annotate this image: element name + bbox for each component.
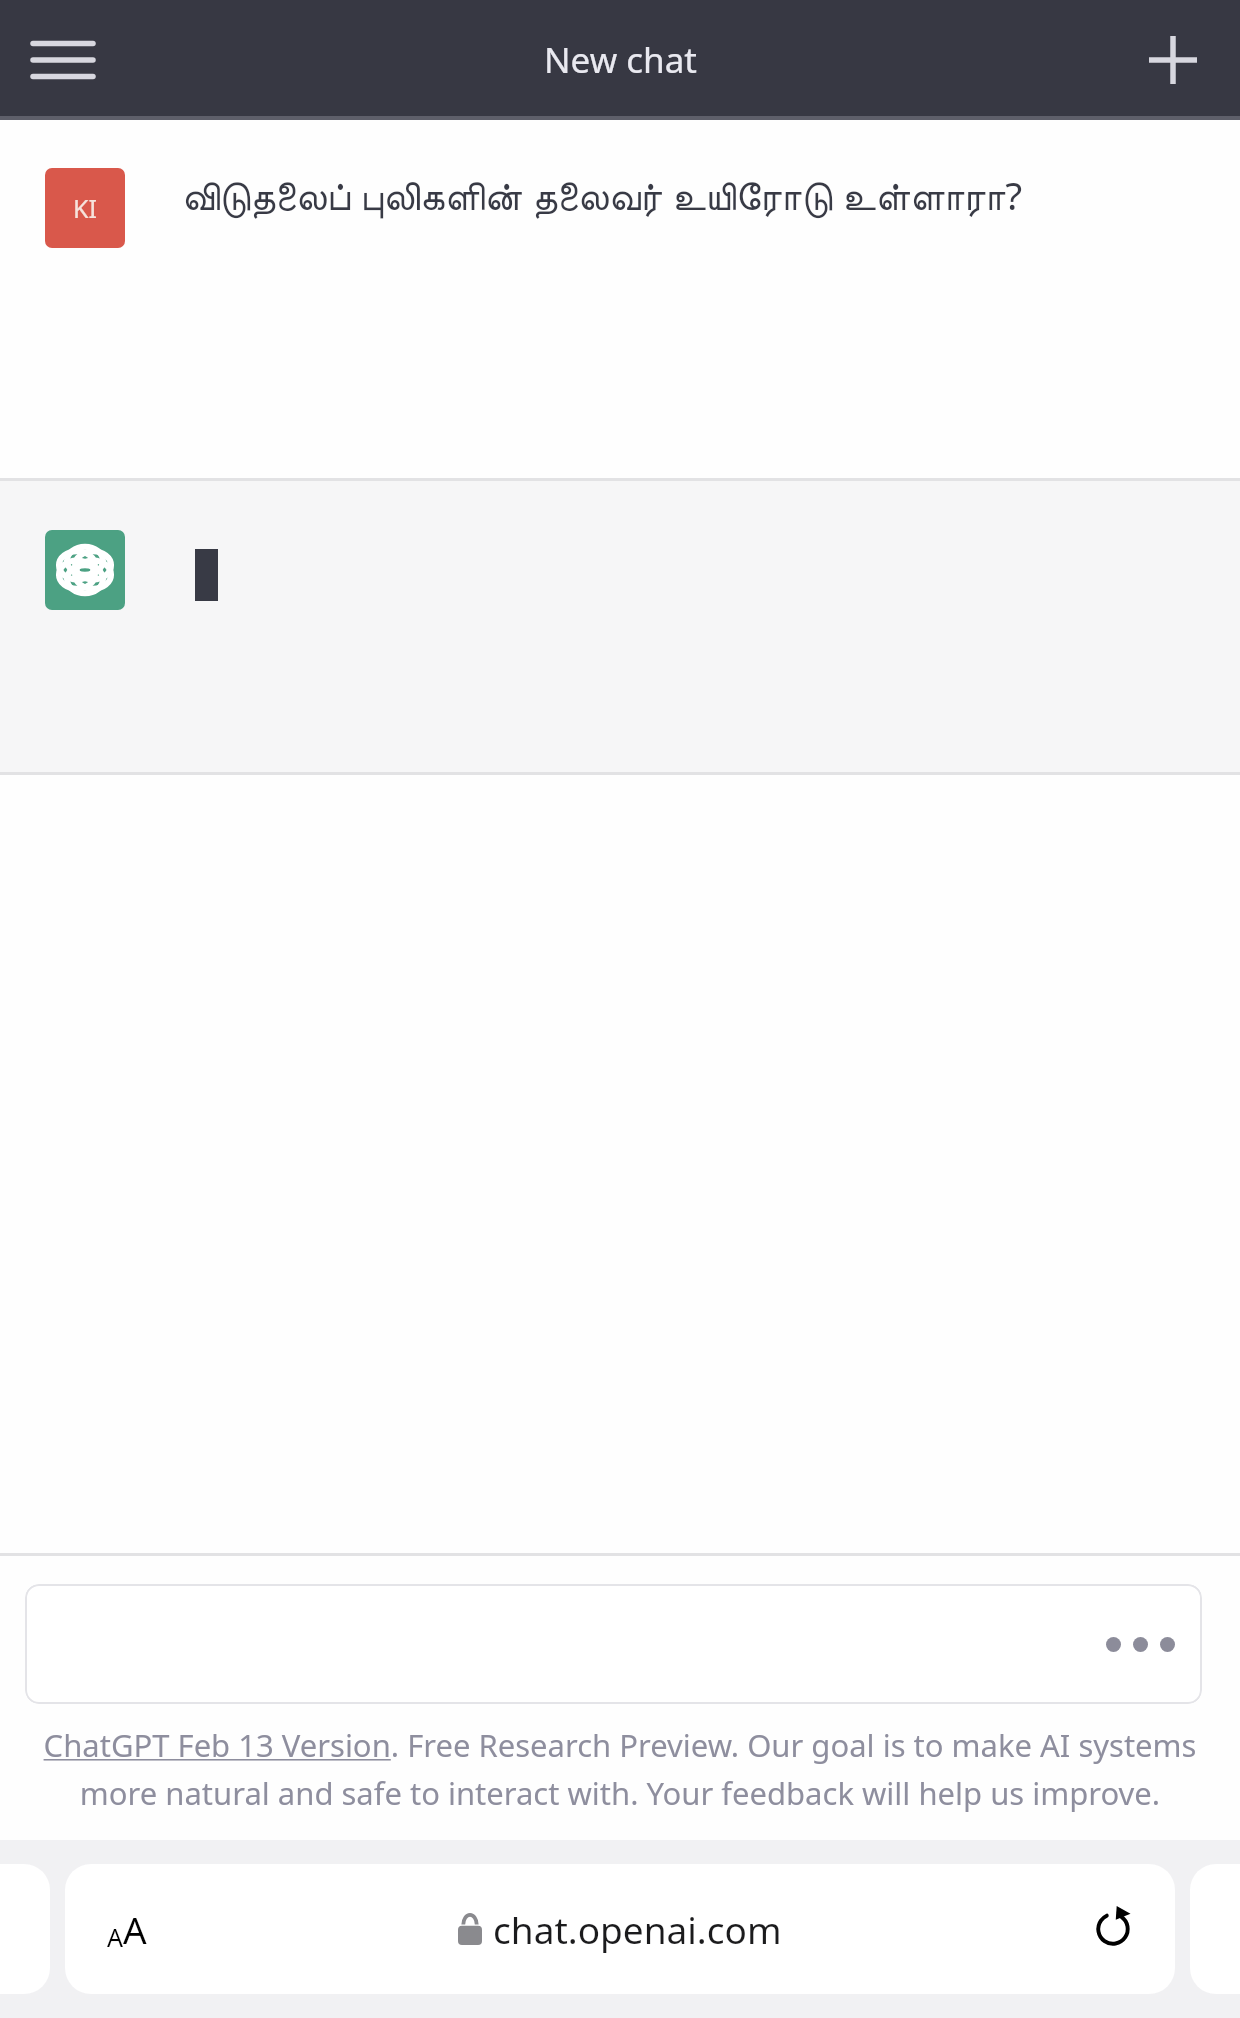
staticText: KI <box>73 191 97 225</box>
button[interactable]: Page settings <box>85 1887 169 1971</box>
button[interactable]: Open menu <box>8 5 118 115</box>
staticText: A <box>107 1920 123 1954</box>
button[interactable]: Page settings <box>65 1864 1175 1994</box>
staticText: chat.openai.com <box>493 1904 782 1954</box>
button[interactable]: KI <box>45 168 1195 478</box>
staticText: ChatGPT Feb 13 Version. Free Research Pr… <box>30 1724 1210 1814</box>
button[interactable] <box>0 481 1240 772</box>
staticText: A <box>123 1904 147 1954</box>
button[interactable]: More options <box>25 1584 1202 1704</box>
button[interactable]: New chat <box>1118 5 1228 115</box>
button[interactable]: More options <box>1106 1637 1175 1652</box>
staticText: விடுதலைப் புலிகளின் தலைவர் உயிரோடு உள்ளா… <box>182 168 1023 221</box>
button[interactable]: Reload <box>1071 1887 1155 1971</box>
staticText: New chat <box>544 36 697 84</box>
